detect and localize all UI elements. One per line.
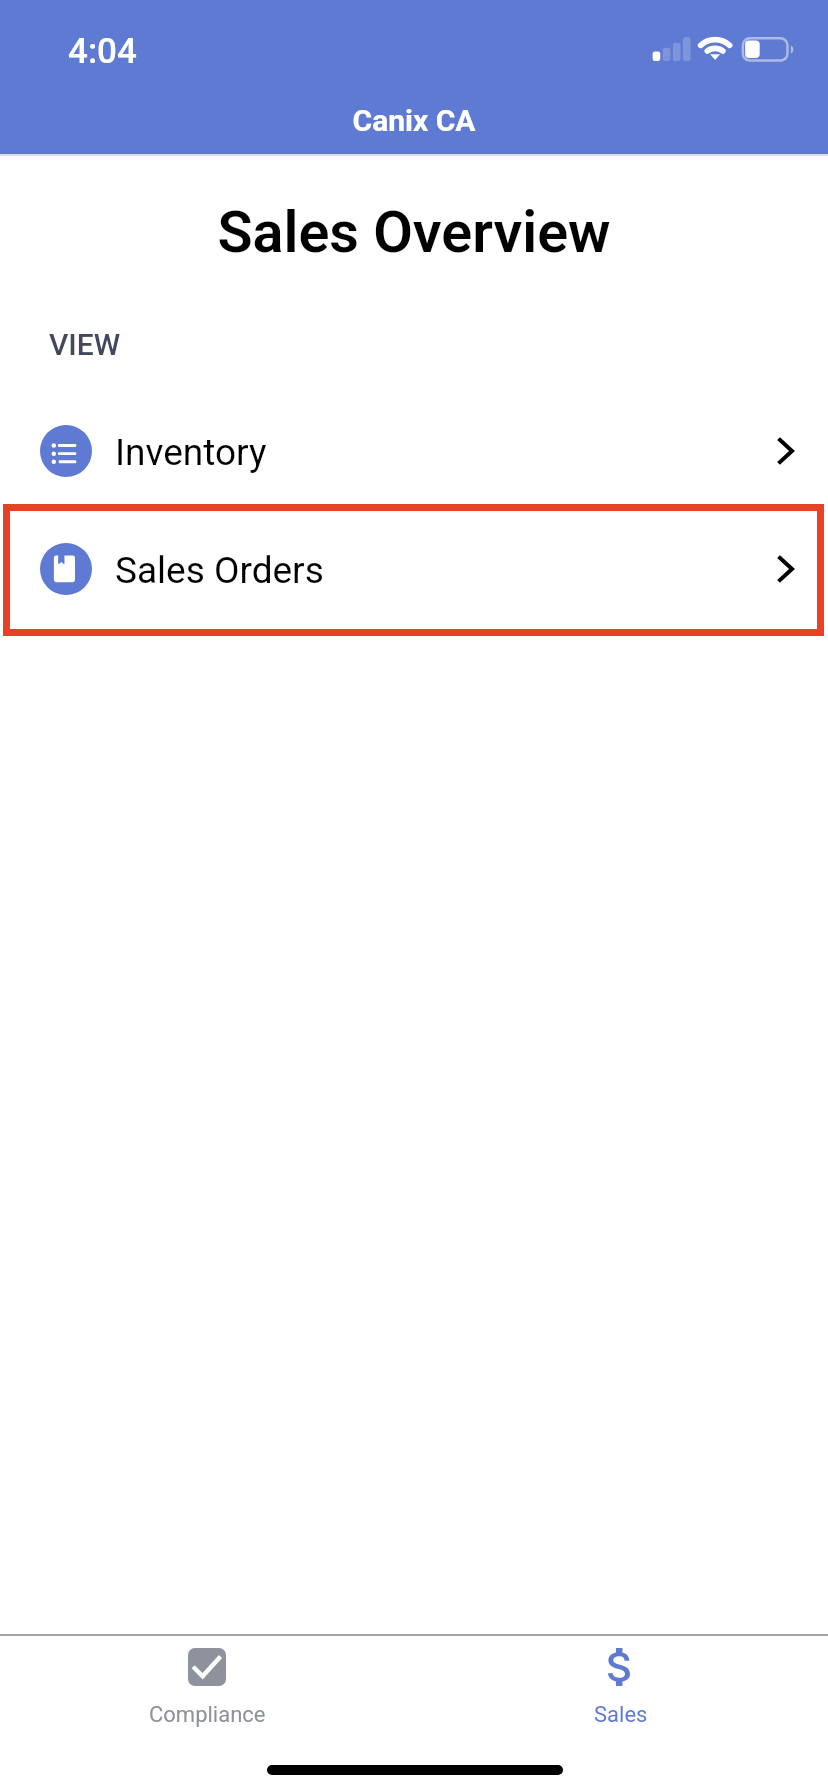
button[interactable]: Compliance	[0, 1636, 414, 1746]
staticText: Compliance	[149, 1702, 266, 1728]
staticText: Canix CA	[0, 103, 828, 138]
staticText: 4:04	[68, 31, 137, 72]
staticText: Sales	[594, 1702, 648, 1728]
staticText: Sales Orders	[115, 549, 324, 592]
button[interactable]: Sales	[414, 1636, 828, 1746]
staticText: Sales Overview	[0, 199, 828, 266]
staticText: Inventory	[115, 431, 267, 474]
button[interactable]: Inventory	[0, 391, 828, 510]
button[interactable]: Sales Orders	[0, 509, 828, 628]
staticText: VIEW	[49, 327, 121, 362]
other: Cellular signal, Wi-Fi and battery statu…	[650, 34, 796, 64]
